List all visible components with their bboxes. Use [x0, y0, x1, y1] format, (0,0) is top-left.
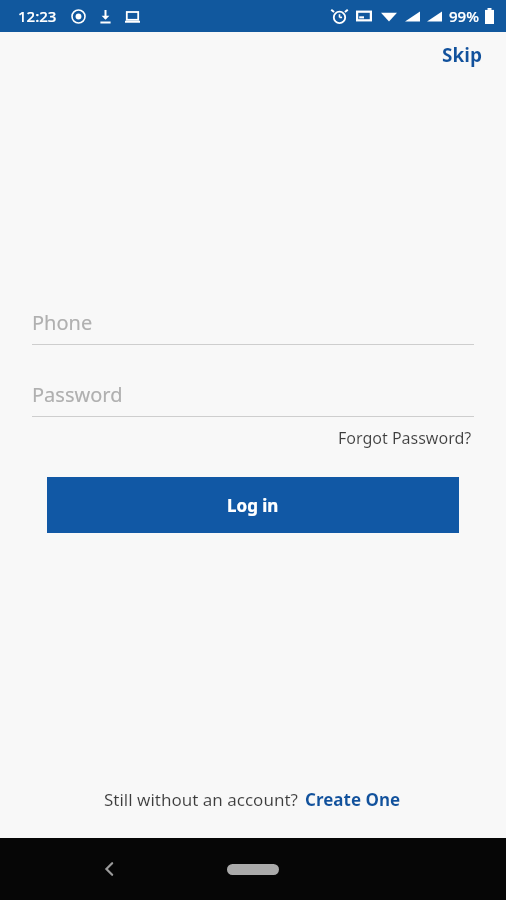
staticText: Skip: [442, 42, 482, 68]
button[interactable]: Forgot Password?: [336, 423, 474, 453]
staticText: Phone: [32, 309, 93, 336]
staticText: Password: [32, 381, 123, 408]
staticText: 99%: [449, 6, 479, 26]
button[interactable]: Skip: [418, 32, 506, 78]
button[interactable]: Phone: [32, 300, 474, 344]
button[interactable]: Back: [88, 847, 132, 891]
staticText: Forgot Password?: [338, 427, 472, 449]
staticText: 12:23: [18, 6, 57, 26]
staticText: Still without an account?: [104, 788, 298, 811]
button[interactable]: Home: [218, 851, 288, 887]
staticText: Log in: [227, 494, 279, 517]
staticText: Create One: [305, 788, 401, 811]
button[interactable]: Create One: [298, 785, 403, 814]
button[interactable]: Password: [32, 372, 474, 416]
button[interactable]: Log in: [47, 477, 459, 533]
